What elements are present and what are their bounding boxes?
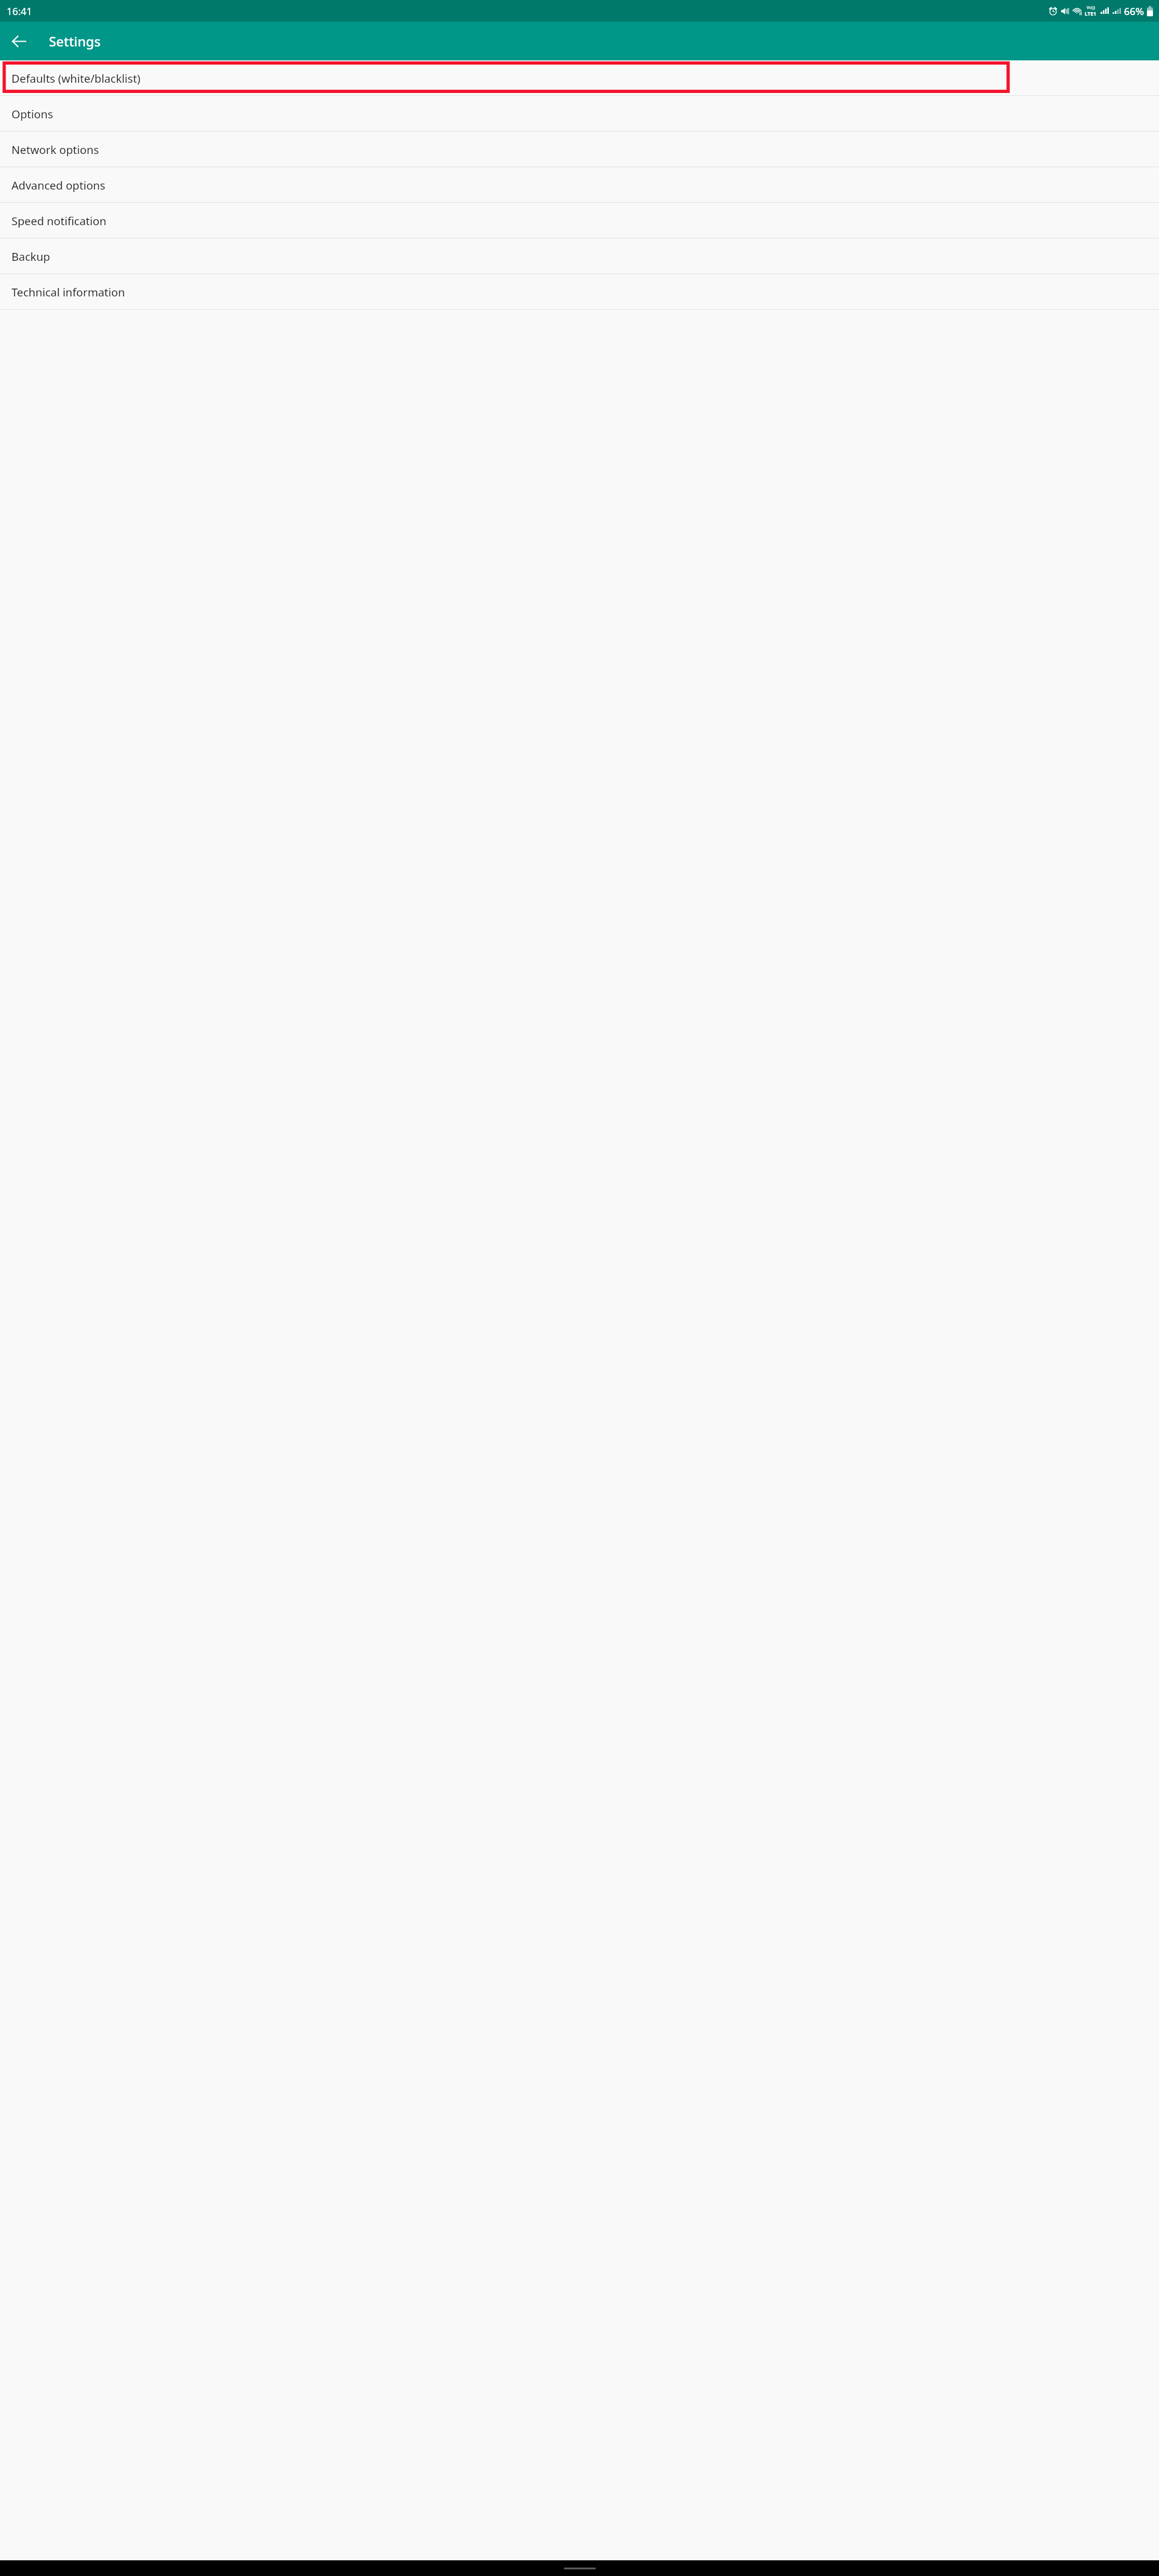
staticText: Network options xyxy=(11,142,99,157)
staticText: 16:41 xyxy=(7,4,33,18)
staticText: LTE1 xyxy=(1085,10,1097,18)
staticText: 66% xyxy=(1124,4,1144,18)
button[interactable]: Defaults (white/blacklist) xyxy=(0,60,1159,95)
staticText: Options xyxy=(11,106,53,121)
staticText: Technical information xyxy=(11,284,125,299)
staticText: Speed notification xyxy=(11,213,107,228)
button[interactable]: Speed notification xyxy=(0,203,1159,238)
staticText: Settings xyxy=(49,32,101,50)
staticText: Advanced options xyxy=(11,177,106,193)
staticText: Defaults (white/blacklist) xyxy=(11,71,141,86)
button[interactable]: Backup xyxy=(0,238,1159,273)
button[interactable]: Network options xyxy=(0,132,1159,167)
staticText: Backup xyxy=(11,249,50,264)
button[interactable]: Advanced options xyxy=(0,167,1159,202)
button[interactable]: Options xyxy=(0,96,1159,131)
staticText: Vo)) xyxy=(1087,4,1095,10)
button[interactable]: Technical information xyxy=(0,274,1159,309)
button[interactable]: Back xyxy=(4,27,33,56)
